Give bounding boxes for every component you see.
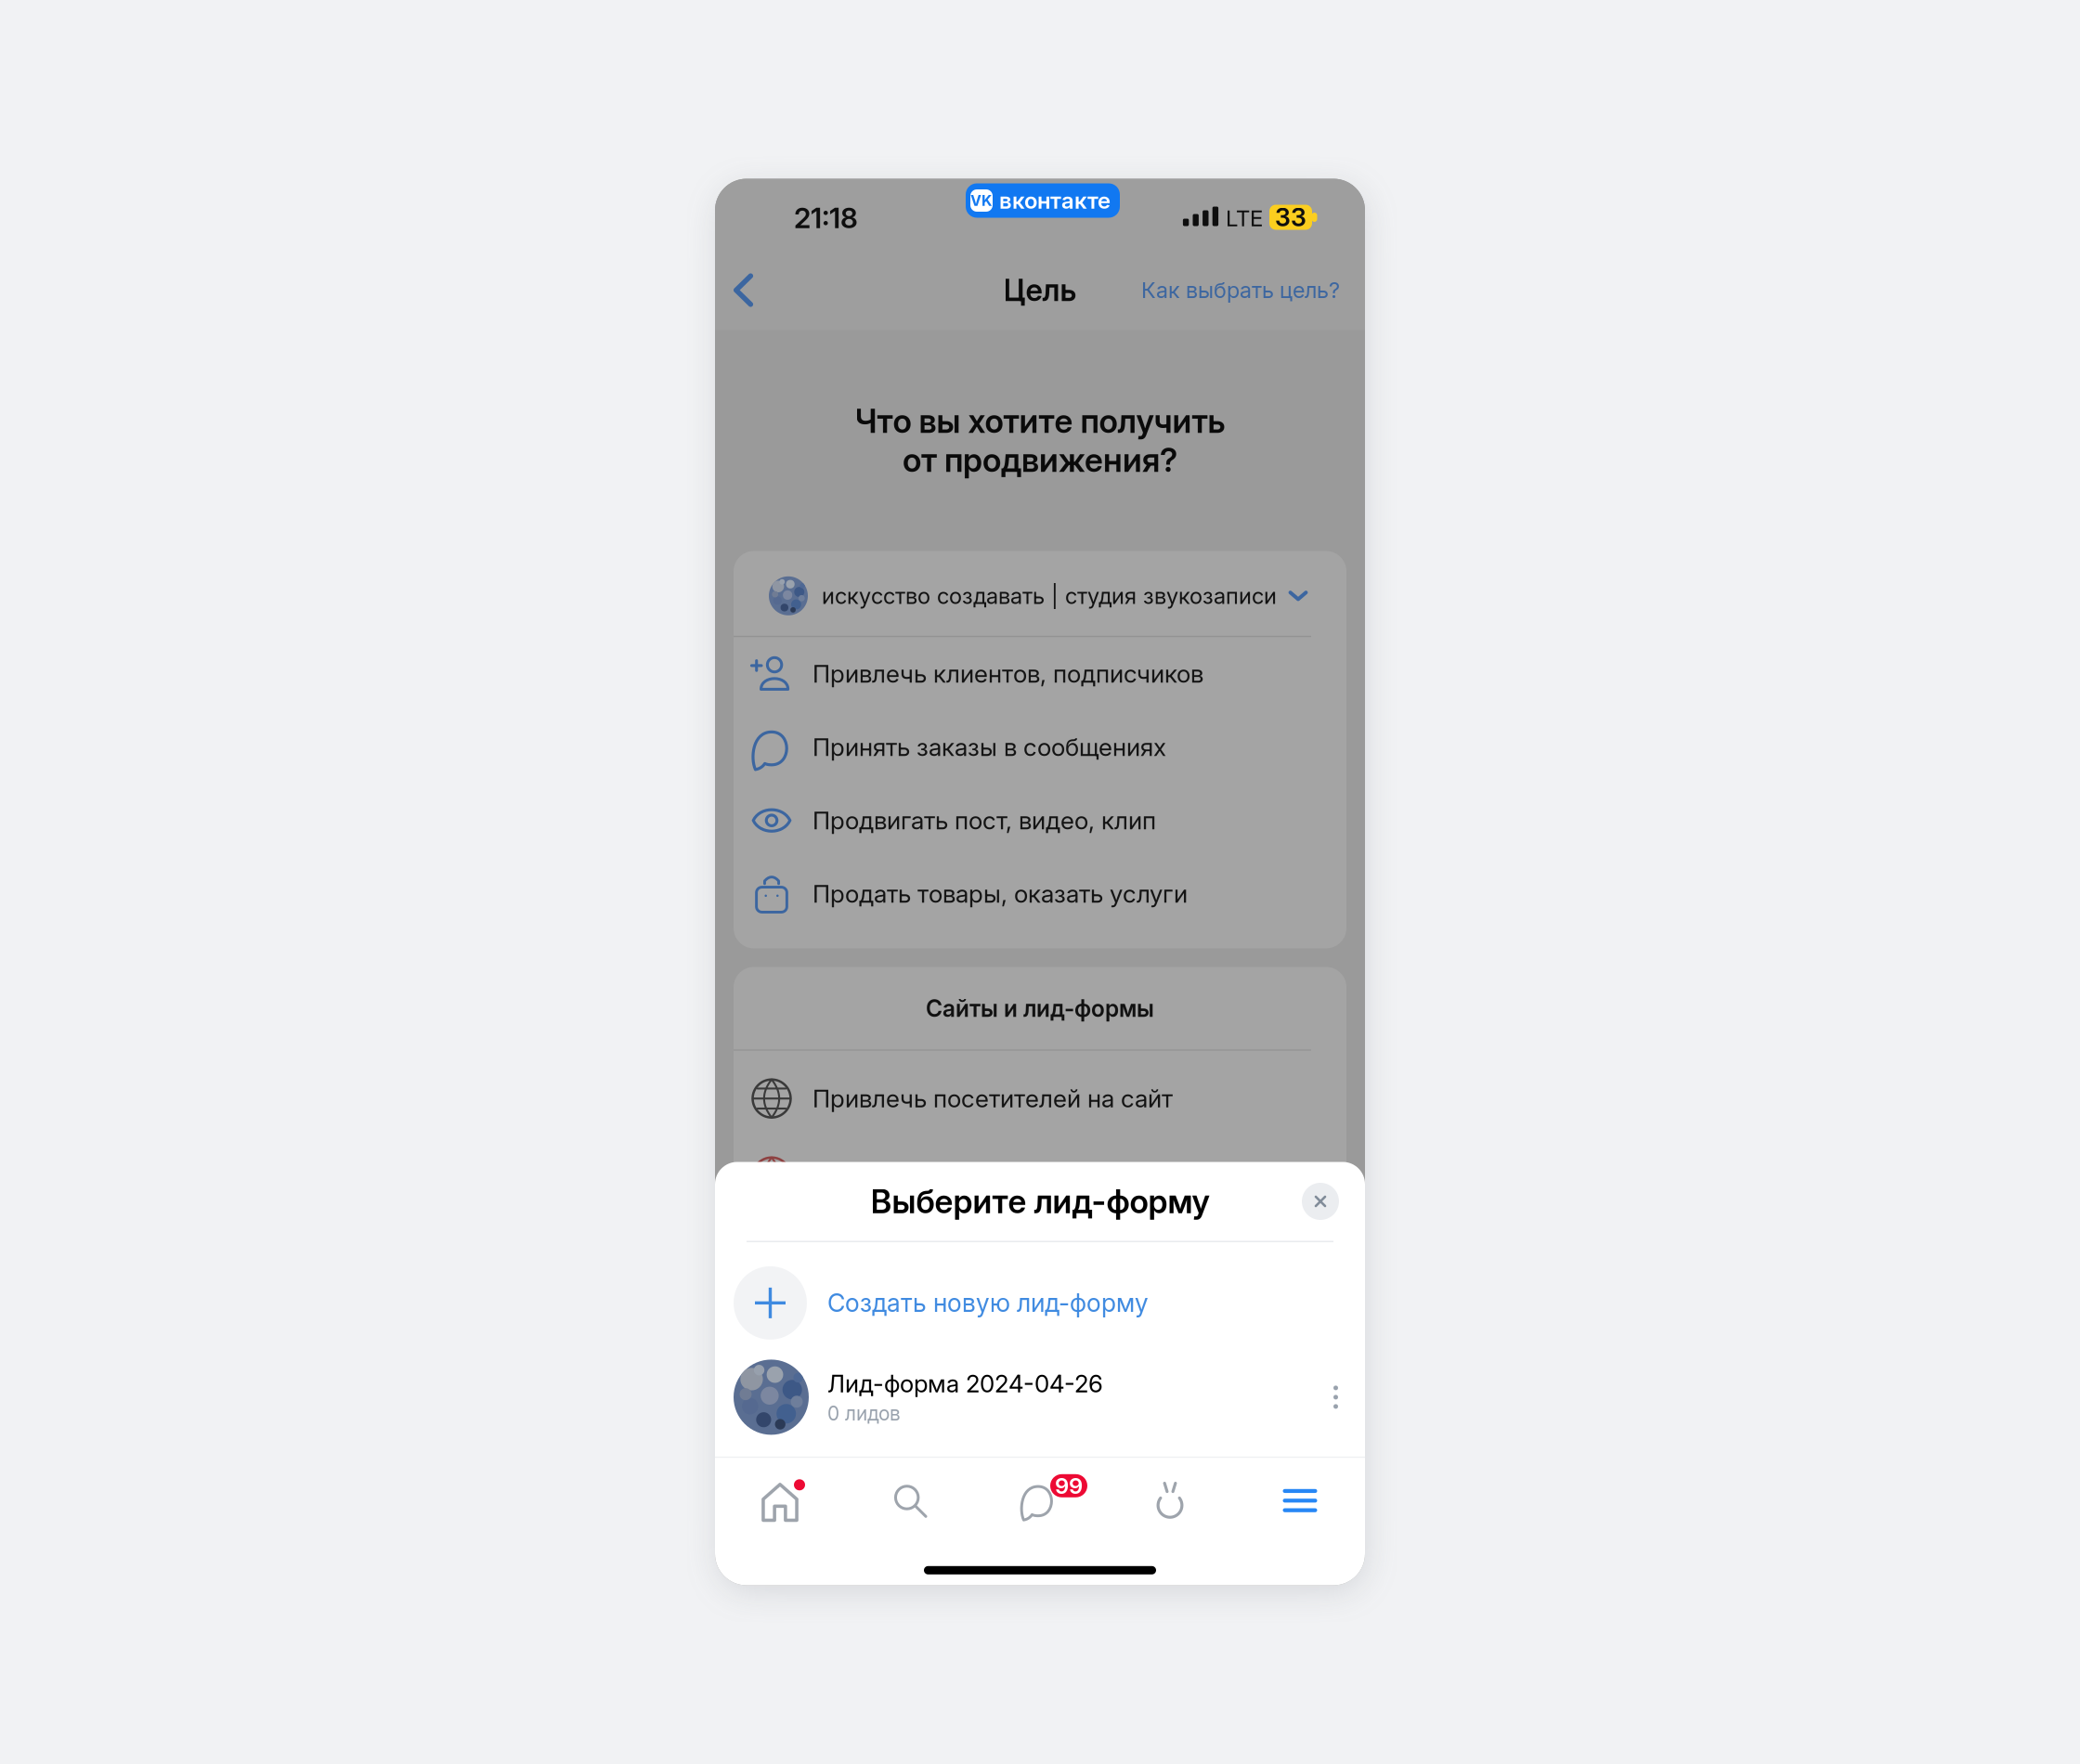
button[interactable]: Поиск xyxy=(845,1463,975,1538)
staticText: 99 xyxy=(1055,1472,1083,1499)
button[interactable]: Привлечь посетителей на сайт xyxy=(734,1062,1346,1135)
button[interactable]: Сообщения xyxy=(975,1463,1105,1538)
button[interactable]: Собрать заявки в лид-форме xyxy=(734,1140,1346,1213)
staticText: 21:18 xyxy=(794,201,858,235)
staticText: 0 лидов xyxy=(827,1402,901,1425)
button[interactable]: Привлечь клиентов, подписчиков xyxy=(734,637,1346,710)
button[interactable]: Продвигать пост, видео, клип xyxy=(734,784,1346,857)
button[interactable]: Закрыть xyxy=(1294,1175,1346,1227)
staticText: Принять заказы в сообщениях xyxy=(812,732,1166,762)
button[interactable]: искусство создавать | студия звукозаписи xyxy=(734,556,1346,636)
button[interactable]: Меню xyxy=(1235,1463,1365,1538)
staticText: Лид-форма 2024-04-26 xyxy=(827,1369,1103,1398)
button[interactable]: Клипы xyxy=(1105,1463,1235,1538)
staticText: Цель xyxy=(1003,272,1077,308)
staticText: Сайты и лид-формы xyxy=(926,995,1154,1022)
staticText: LTE xyxy=(1226,205,1263,232)
staticText: Как выбрать цель? xyxy=(1141,277,1340,303)
staticText: Продвигать пост, видео, клип xyxy=(812,806,1156,835)
staticText: Что вы хотите получить xyxy=(855,401,1225,441)
button[interactable]: Создать новую лид-форму xyxy=(715,1257,1365,1349)
staticText: 33 xyxy=(1275,202,1306,232)
staticText: Привлечь клиентов, подписчиков xyxy=(812,659,1203,688)
staticText: Продать товары, оказать услуги xyxy=(812,879,1188,908)
staticText: искусство создавать | студия звукозаписи xyxy=(822,582,1277,609)
staticText: Создать новую лид-форму xyxy=(827,1288,1149,1318)
staticText: Выберите лид-форму xyxy=(871,1182,1209,1221)
staticText: вконтакте xyxy=(999,187,1111,214)
button[interactable]: Новости xyxy=(715,1463,845,1538)
button[interactable]: Принять заказы в сообщениях xyxy=(734,710,1346,784)
staticText: Собрать заявки в лид-форме xyxy=(812,1162,1151,1191)
button[interactable]: Лид-форма 2024-04-26 xyxy=(715,1349,1365,1445)
button[interactable]: Как выбрать цель? xyxy=(1141,263,1340,317)
button[interactable]: Назад xyxy=(722,263,776,317)
staticText: VK xyxy=(970,192,993,210)
staticText: Привлечь посетителей на сайт xyxy=(812,1084,1173,1113)
staticText: от продвижения? xyxy=(903,440,1177,480)
button[interactable]: Продать товары, оказать услуги xyxy=(734,857,1346,930)
